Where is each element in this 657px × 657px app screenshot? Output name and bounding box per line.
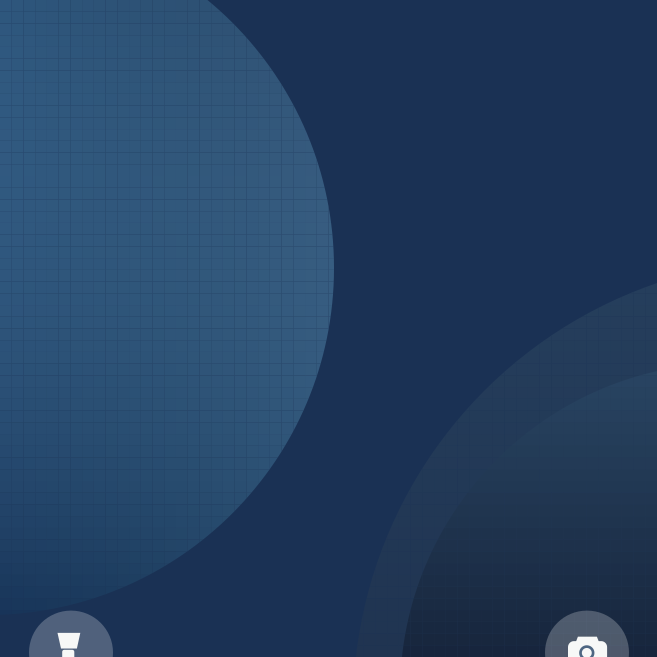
button[interactable]: Camera: [545, 611, 629, 657]
button[interactable]: Flashlight: [29, 611, 113, 657]
